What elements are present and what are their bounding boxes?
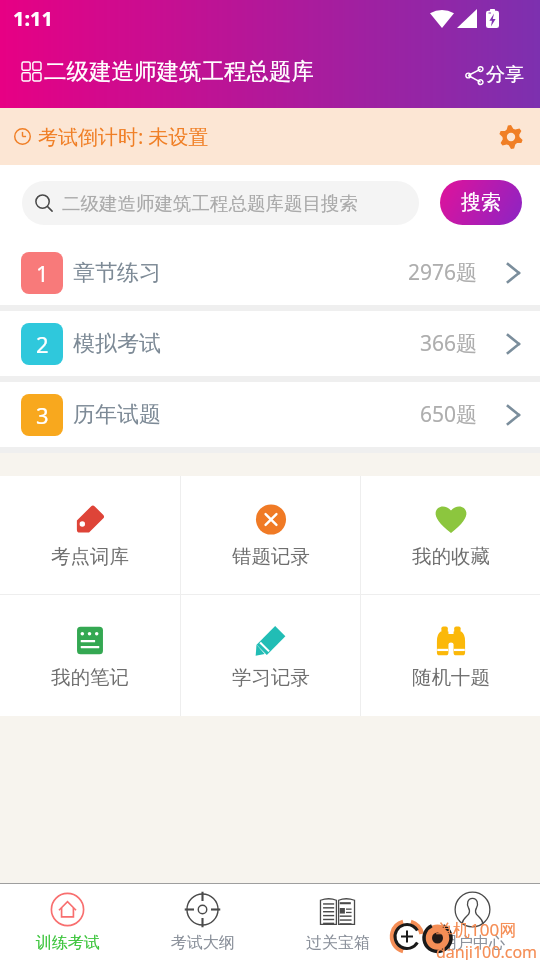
staticText: 随机十题	[412, 665, 490, 690]
staticText: 考试大纲	[171, 933, 235, 953]
staticText: 我的收藏	[412, 544, 490, 569]
button[interactable]: 我的收藏	[361, 476, 540, 594]
staticText: 历年试题	[73, 401, 161, 429]
staticText: 2	[36, 329, 49, 359]
button[interactable]: 我的笔记	[0, 595, 180, 716]
button[interactable]: 考点词库	[0, 476, 180, 594]
staticText: 章节练习	[73, 259, 161, 287]
button[interactable]: 1	[0, 240, 540, 305]
staticText: 650题	[420, 400, 478, 429]
button[interactable]: 分享	[461, 57, 528, 93]
staticText: 二级建造师建筑工程总题库	[44, 57, 314, 85]
staticText: 3	[36, 400, 49, 430]
button[interactable]: 二级建造师建筑工程总题库题目搜索	[22, 181, 419, 225]
button[interactable]: 训练考试	[0, 884, 135, 960]
staticText: 过关宝箱	[306, 933, 370, 953]
button[interactable]: 搜索	[440, 180, 522, 225]
staticText: 1	[36, 258, 49, 288]
button[interactable]: 3	[0, 382, 540, 447]
staticText: 考试倒计时: 未设置	[38, 123, 209, 150]
staticText: 训练考试	[36, 933, 100, 953]
staticText: 分享	[486, 63, 524, 87]
staticText: 学习记录	[232, 665, 310, 690]
button[interactable]: 用户中心	[405, 884, 540, 960]
button[interactable]: 错题记录	[181, 476, 360, 594]
button[interactable]: 设置	[495, 121, 527, 153]
staticText: 错题记录	[232, 544, 310, 569]
button[interactable]: 随机十题	[361, 595, 540, 716]
staticText: 模拟考试	[73, 330, 161, 358]
button[interactable]: 2	[0, 311, 540, 376]
button[interactable]: 学习记录	[181, 595, 360, 716]
staticText: 1:11	[13, 5, 53, 32]
button[interactable]: 过关宝箱	[270, 884, 405, 960]
button[interactable]: 考试大纲	[135, 884, 270, 960]
staticText: 单机100网	[436, 918, 517, 941]
staticText: 二级建造师建筑工程总题库题目搜索	[62, 192, 358, 215]
staticText: 用户中心	[441, 933, 505, 953]
staticText: danji100.com	[436, 941, 538, 960]
staticText: 考点词库	[51, 544, 129, 569]
staticText: 2976题	[408, 258, 478, 287]
staticText: 366题	[420, 329, 478, 358]
staticText: 我的笔记	[51, 665, 129, 690]
staticText: 搜索	[461, 190, 501, 215]
